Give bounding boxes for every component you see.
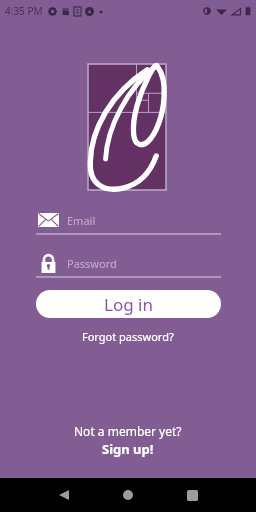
button[interactable]: Home bbox=[110, 478, 146, 512]
staticText: Forgot password? bbox=[82, 329, 174, 344]
staticText: 4:35 PM bbox=[5, 4, 43, 18]
staticText: Not a member yet? bbox=[74, 423, 182, 439]
button[interactable]: Recent apps bbox=[174, 478, 210, 512]
staticText: Log in bbox=[104, 293, 153, 316]
staticText: Email bbox=[67, 213, 96, 228]
staticText: Password bbox=[67, 256, 117, 271]
button[interactable]: Sign up! bbox=[0, 440, 256, 458]
button[interactable]: Forgot password? bbox=[0, 329, 256, 344]
button[interactable]: Back bbox=[46, 478, 82, 512]
staticText: Sign up! bbox=[102, 440, 154, 458]
button[interactable]: Log in bbox=[36, 290, 221, 318]
